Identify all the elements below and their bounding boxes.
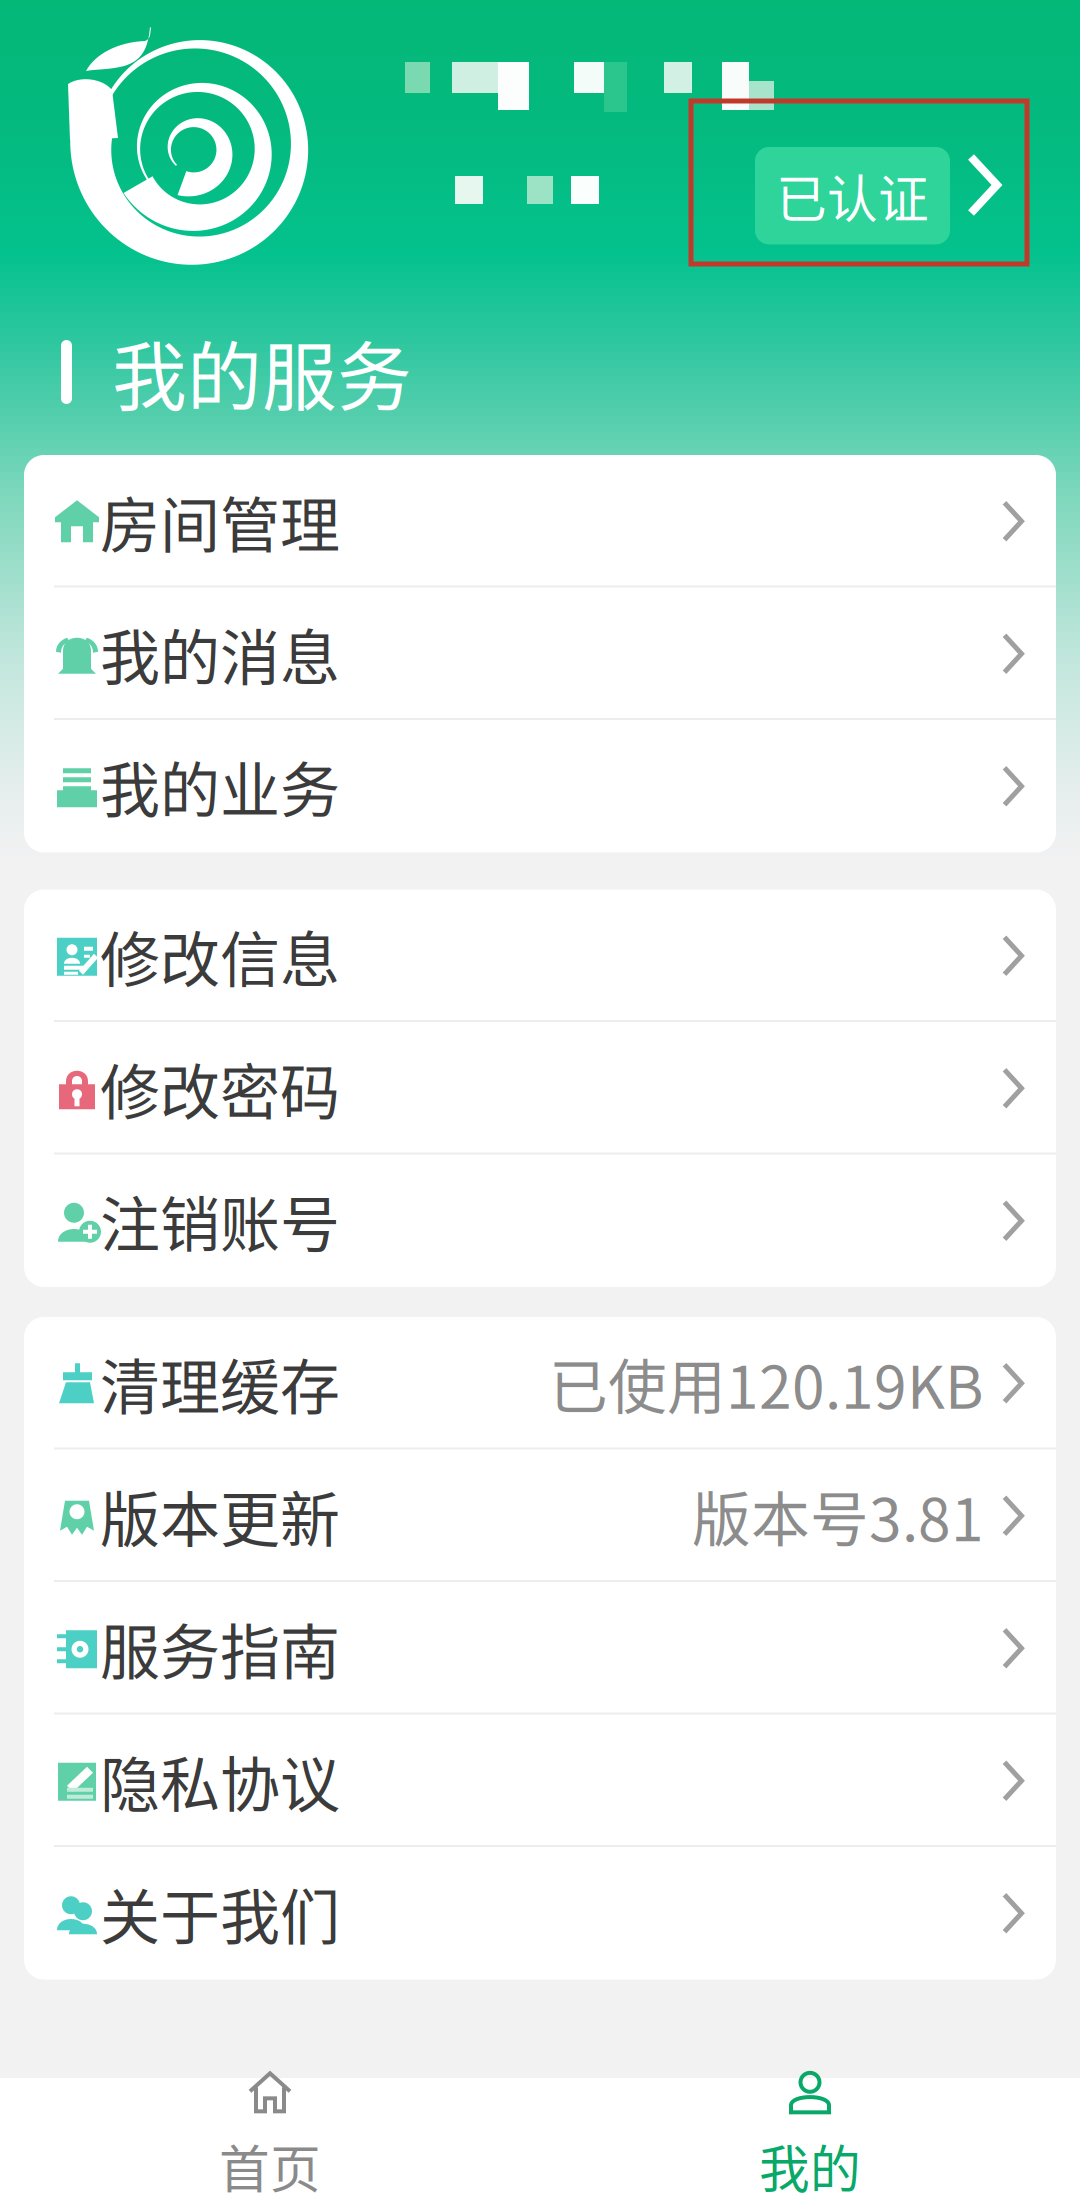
staticText: 房间管理 (100, 478, 340, 565)
button[interactable]: 隐私协议 (24, 1714, 1056, 1847)
staticText: 服务指南 (100, 1605, 340, 1692)
staticText: 已认证 (776, 159, 929, 232)
staticText: 版本更新 (100, 1472, 340, 1559)
staticText: 注销账号 (100, 1177, 340, 1264)
staticText: 修改信息 (100, 912, 340, 999)
button[interactable]: 修改密码 (24, 1022, 1056, 1154)
staticText: 我的 (759, 2129, 861, 2194)
staticText: 我的业务 (100, 743, 340, 830)
button[interactable]: 版本更新 (24, 1449, 1056, 1582)
staticText: 关于我们 (100, 1870, 340, 1957)
staticText: 我的消息 (100, 610, 340, 697)
button[interactable]: 首页 (0, 2078, 540, 2194)
button[interactable]: 我的消息 (24, 587, 1056, 720)
button[interactable]: 房间管理 (24, 455, 1056, 587)
staticText: 清理缓存 (100, 1340, 340, 1427)
staticText: 修改密码 (100, 1045, 340, 1132)
staticText: 隐私协议 (100, 1737, 340, 1824)
staticText: 版本号3.81 (692, 1473, 984, 1558)
button[interactable]: 注销账号 (24, 1154, 1056, 1287)
staticText: 首页 (219, 2129, 321, 2194)
staticText: 我的服务 (112, 318, 412, 426)
button[interactable]: 我的 (540, 2078, 1080, 2194)
button[interactable]: 我的业务 (24, 720, 1056, 852)
button[interactable]: 修改信息 (24, 889, 1056, 1022)
button[interactable]: 清理缓存 (24, 1317, 1056, 1449)
button[interactable]: 已认证 (691, 101, 1027, 264)
staticText: 已使用120.19KB (549, 1341, 984, 1426)
button[interactable]: 服务指南 (24, 1582, 1056, 1714)
button[interactable]: 关于我们 (24, 1847, 1056, 1979)
